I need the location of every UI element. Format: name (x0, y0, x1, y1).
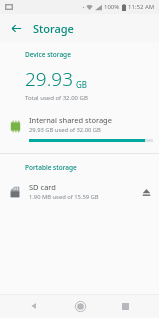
staticText: Total used of 32.00 GB (25, 94, 88, 102)
staticText: Internal shared storage (29, 115, 112, 125)
button[interactable]: Internal shared storage (0, 113, 159, 144)
button[interactable]: Back (6, 18, 26, 38)
staticText: 100% (104, 3, 120, 11)
staticText: Storage (33, 21, 74, 36)
staticText: 29.93 GB used of 32.00 GB (29, 126, 101, 134)
staticText: SD card (29, 182, 56, 192)
button[interactable]: Eject SD card (137, 183, 155, 201)
button[interactable]: Back (23, 295, 45, 317)
staticText: 29.93 (25, 66, 74, 92)
button[interactable]: Home (69, 295, 91, 317)
staticText: Device storage (25, 50, 71, 59)
button[interactable]: SD card (0, 180, 159, 203)
staticText: Portable storage (25, 163, 77, 172)
staticText: 1.90 MB used of 15.59 GB (29, 193, 99, 201)
button[interactable]: Recent apps (114, 295, 136, 317)
staticText: 11:52 AM (128, 3, 155, 11)
staticText: GB (76, 79, 88, 90)
